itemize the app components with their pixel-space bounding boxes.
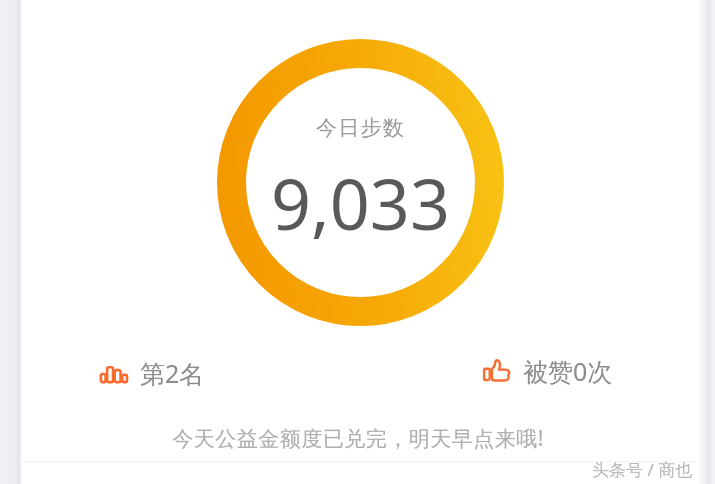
staticText: 头条号 / 商也 (592, 458, 693, 481)
staticText: 被赞0次 (523, 354, 613, 388)
button[interactable]: 今日步数 (217, 39, 504, 326)
button[interactable]: Ranking (98, 352, 207, 394)
staticText: 今日步数 (316, 115, 405, 141)
other: Likes (483, 357, 511, 385)
staticText: 9,033 (271, 155, 450, 250)
staticText: 今天公益金额度已兑完，明天早点来哦! (172, 424, 544, 453)
button[interactable]: Likes (481, 350, 615, 392)
staticText: 第2名 (140, 356, 205, 390)
other: Ranking (100, 361, 128, 385)
button[interactable]: 今天公益金额度已兑完，明天早点来哦! (0, 424, 715, 453)
